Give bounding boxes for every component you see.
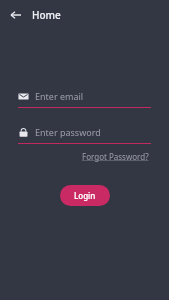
button[interactable]: Forgot Password? xyxy=(81,149,150,164)
staticText: Enter password xyxy=(35,126,101,138)
button[interactable]: Email xyxy=(18,90,151,108)
other: Password xyxy=(18,127,29,138)
staticText: Forgot Password? xyxy=(82,151,149,162)
button[interactable]: Back xyxy=(6,5,26,25)
staticText: Enter email xyxy=(35,90,84,102)
button[interactable]: Password xyxy=(18,126,151,144)
staticText: Home xyxy=(32,8,61,22)
staticText: Login xyxy=(74,190,96,201)
button[interactable]: Login xyxy=(60,185,110,206)
other: Email xyxy=(18,91,29,102)
